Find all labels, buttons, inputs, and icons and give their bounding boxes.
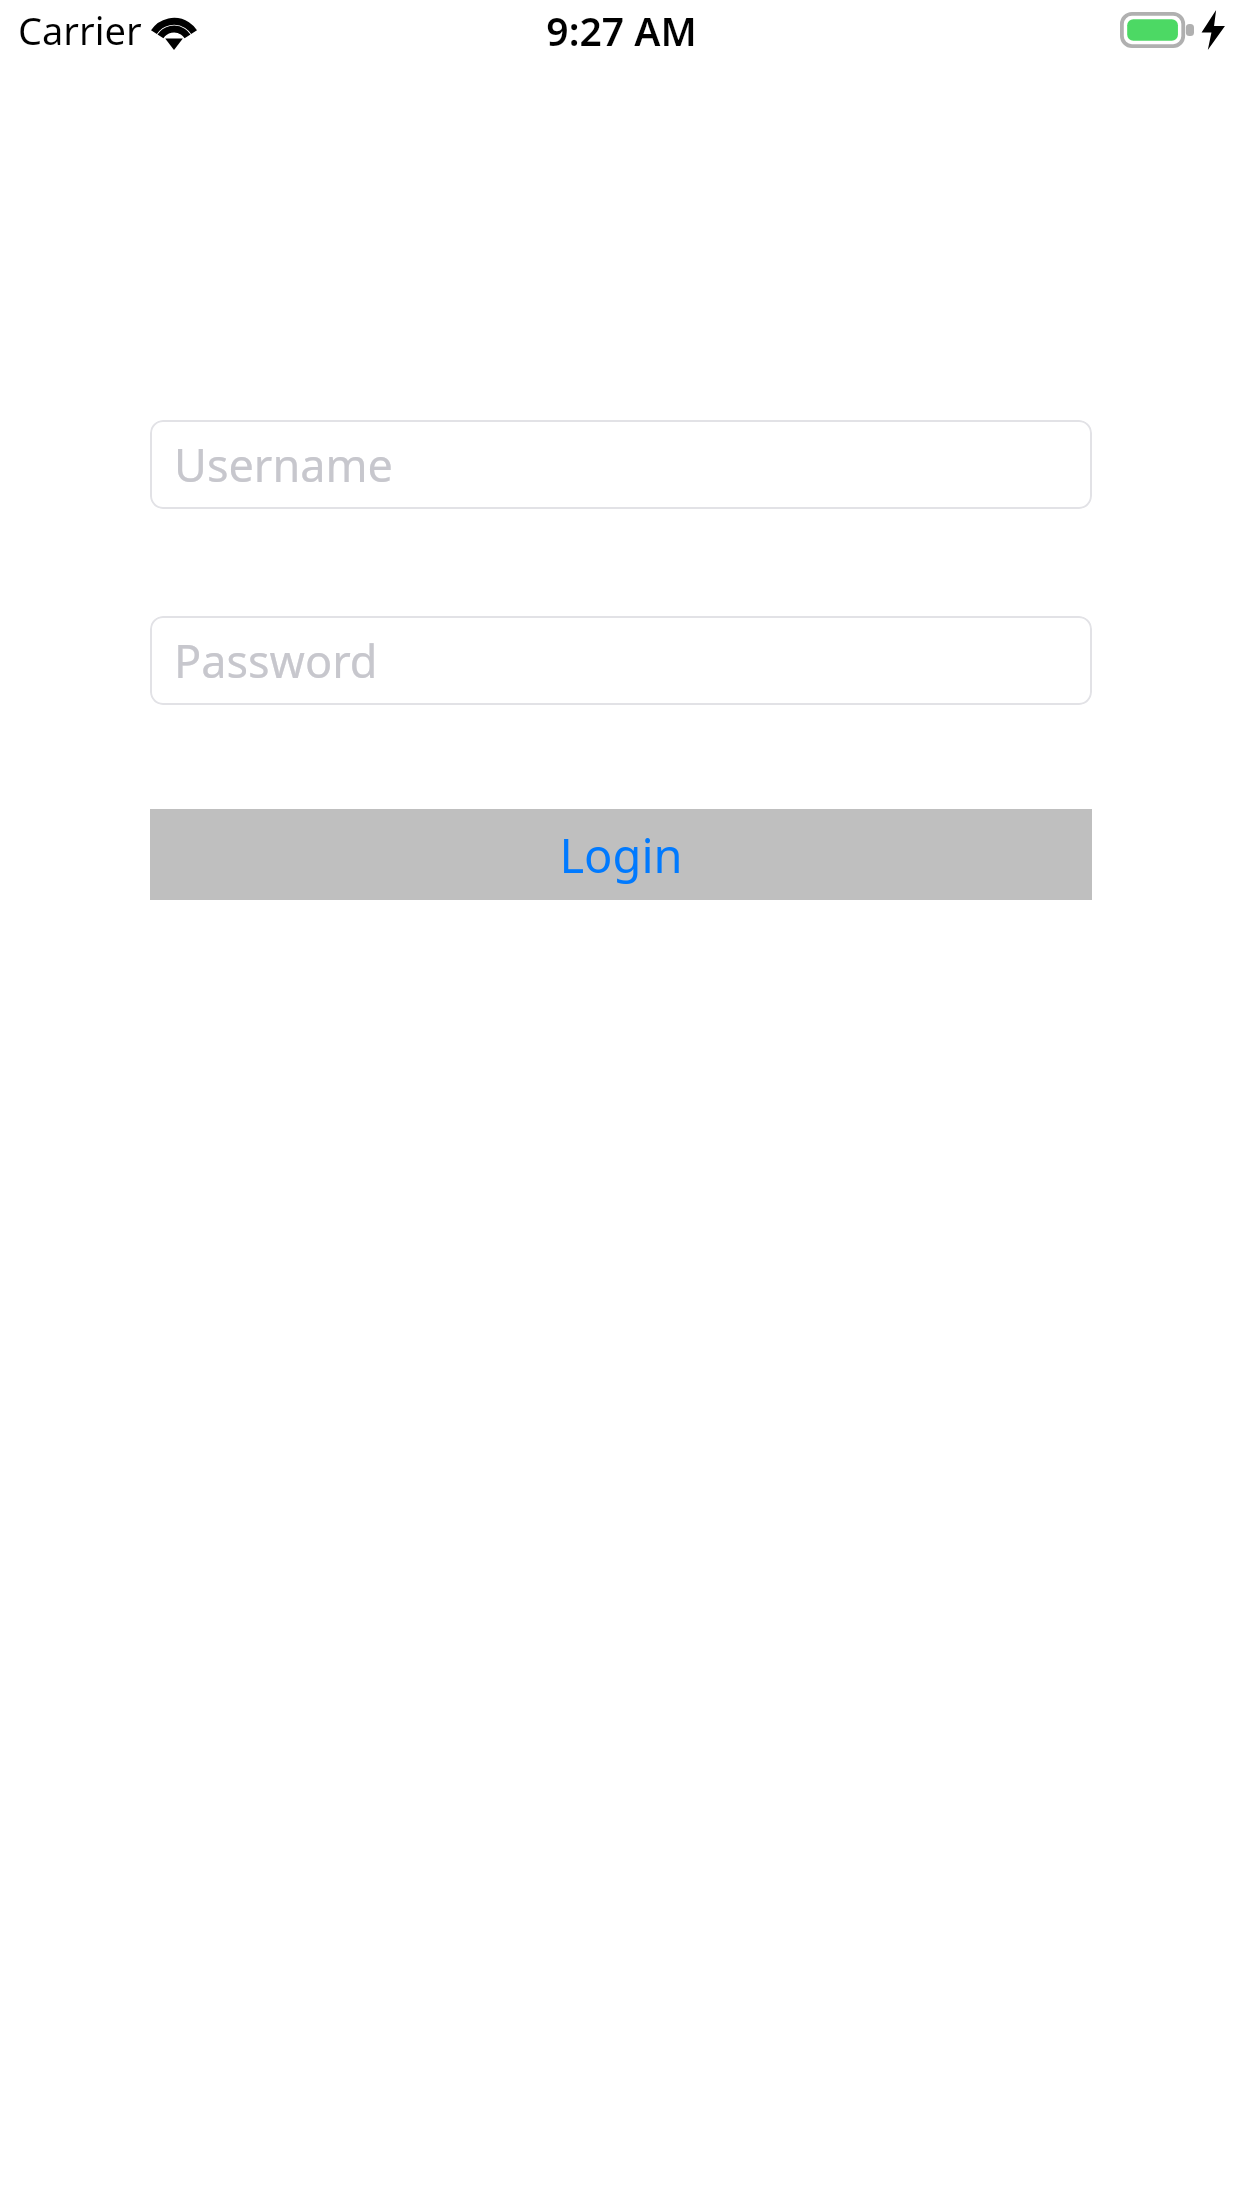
staticText: Carrier [18, 4, 142, 56]
staticText: 9:27 AM [546, 4, 697, 57]
staticText: Password [174, 630, 378, 691]
button[interactable]: Login [150, 809, 1092, 900]
button[interactable]: Username [150, 420, 1092, 509]
staticText: Login [559, 823, 683, 887]
staticText: Username [174, 434, 393, 495]
button[interactable]: Password [150, 616, 1092, 705]
